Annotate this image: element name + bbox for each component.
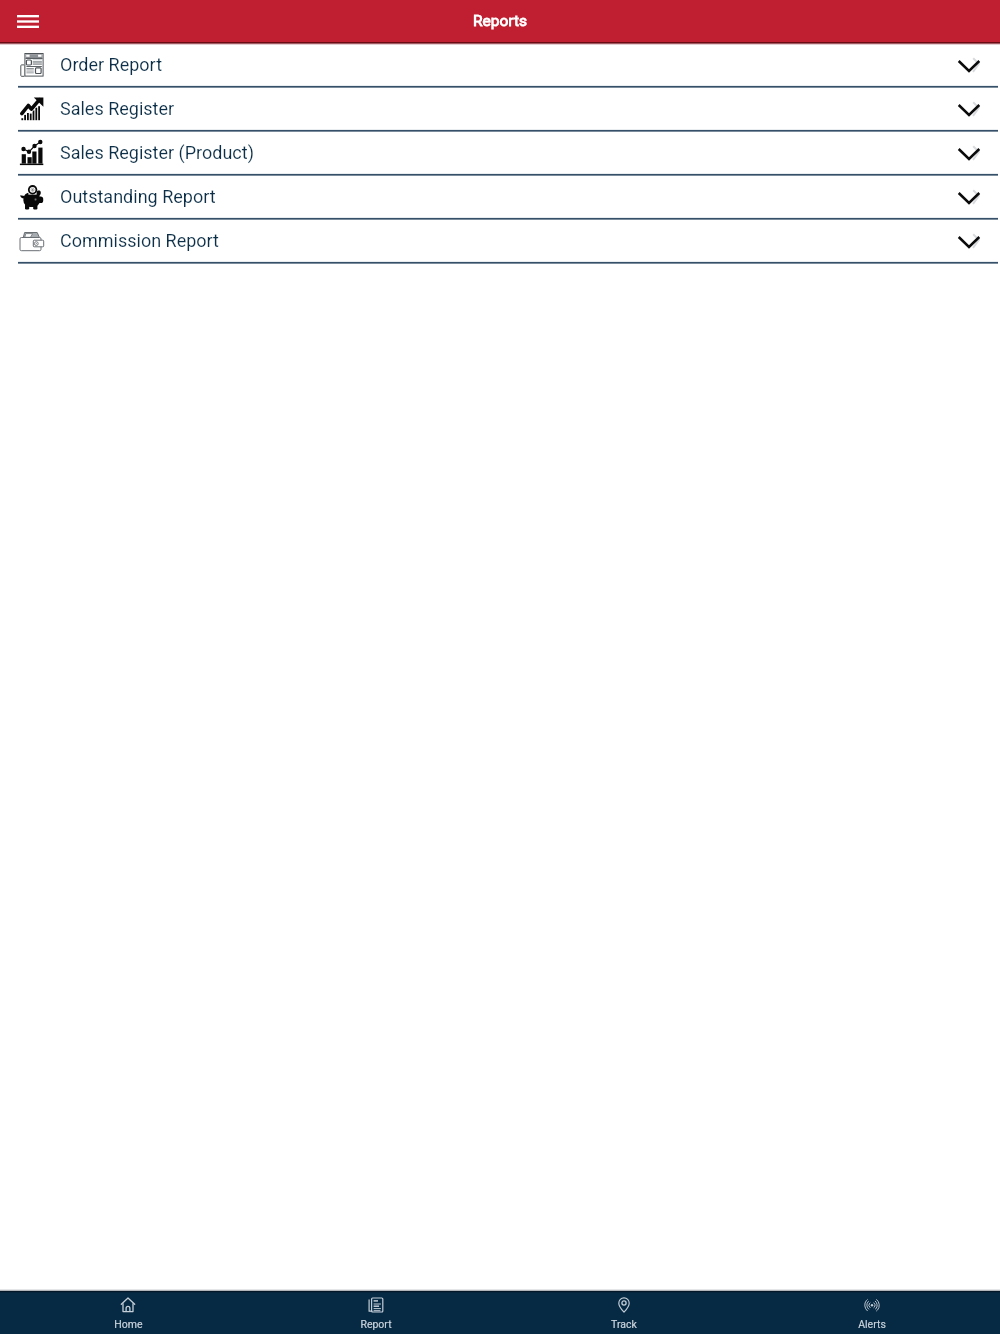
button[interactable]: Expand Commission Report [949, 220, 989, 262]
staticText: Sales Register (Product) [60, 142, 254, 163]
button[interactable]: Track [500, 1291, 748, 1334]
staticText: Track [611, 1318, 637, 1330]
button[interactable]: Expand Order Report [949, 44, 989, 86]
button[interactable]: Sales Register (Product) [0, 132, 1000, 176]
staticText: Reports [473, 12, 528, 30]
staticText: Commission Report [60, 230, 219, 251]
staticText: Alerts [858, 1318, 886, 1330]
staticText: Report [360, 1318, 392, 1330]
button[interactable]: Expand Sales Register (Product) [949, 132, 989, 174]
button[interactable]: Outstanding Report [0, 176, 1000, 220]
button[interactable]: Expand Sales Register [949, 88, 989, 130]
button[interactable]: Open navigation menu [10, 4, 45, 38]
button[interactable]: Expand Outstanding Report [949, 176, 989, 218]
button[interactable]: Alerts [748, 1291, 996, 1334]
button[interactable]: Home [4, 1291, 252, 1334]
button[interactable]: Commission Report [0, 220, 1000, 264]
button[interactable]: Order Report [0, 44, 1000, 88]
staticText: Outstanding Report [60, 186, 216, 207]
button[interactable]: Report [252, 1291, 500, 1334]
staticText: Sales Register [60, 98, 175, 119]
staticText: Home [114, 1318, 143, 1330]
button[interactable]: Sales Register [0, 88, 1000, 132]
staticText: Order Report [60, 54, 163, 75]
